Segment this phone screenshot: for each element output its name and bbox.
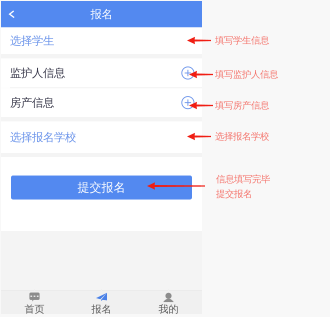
staticText: 监护人信息 bbox=[10, 66, 65, 80]
button[interactable]: 首页 bbox=[1, 291, 68, 314]
staticText: 填写学生信息 bbox=[215, 35, 269, 46]
button[interactable]: Back bbox=[1, 1, 23, 27]
staticText: 房产信息 bbox=[10, 95, 54, 110]
staticText: 我的 bbox=[158, 303, 178, 316]
staticText: 信息填写完毕 bbox=[216, 173, 270, 185]
button[interactable]: 提交报名 bbox=[11, 175, 192, 199]
button[interactable]: 选择报名学校 bbox=[1, 121, 202, 153]
staticText: 填写房产信息 bbox=[215, 100, 269, 111]
staticText: 首页 bbox=[24, 303, 44, 316]
staticText: 选择报名学校 bbox=[215, 131, 269, 142]
button[interactable]: 报名 bbox=[68, 291, 135, 314]
staticText: 选择报名学校 bbox=[10, 130, 76, 144]
staticText: 选择学生 bbox=[10, 34, 54, 48]
button[interactable]: 选择学生 bbox=[1, 27, 202, 54]
staticText: 报名 bbox=[91, 303, 111, 316]
button[interactable]: 房产信息 bbox=[1, 88, 202, 117]
staticText: 报名 bbox=[90, 7, 112, 21]
staticText: 提交报名 bbox=[77, 180, 125, 195]
staticText: 提交报名 bbox=[216, 188, 252, 200]
button[interactable]: 监护人信息 bbox=[1, 58, 202, 87]
button[interactable]: 我的 bbox=[135, 291, 202, 314]
staticText: 填写监护人信息 bbox=[215, 69, 278, 80]
